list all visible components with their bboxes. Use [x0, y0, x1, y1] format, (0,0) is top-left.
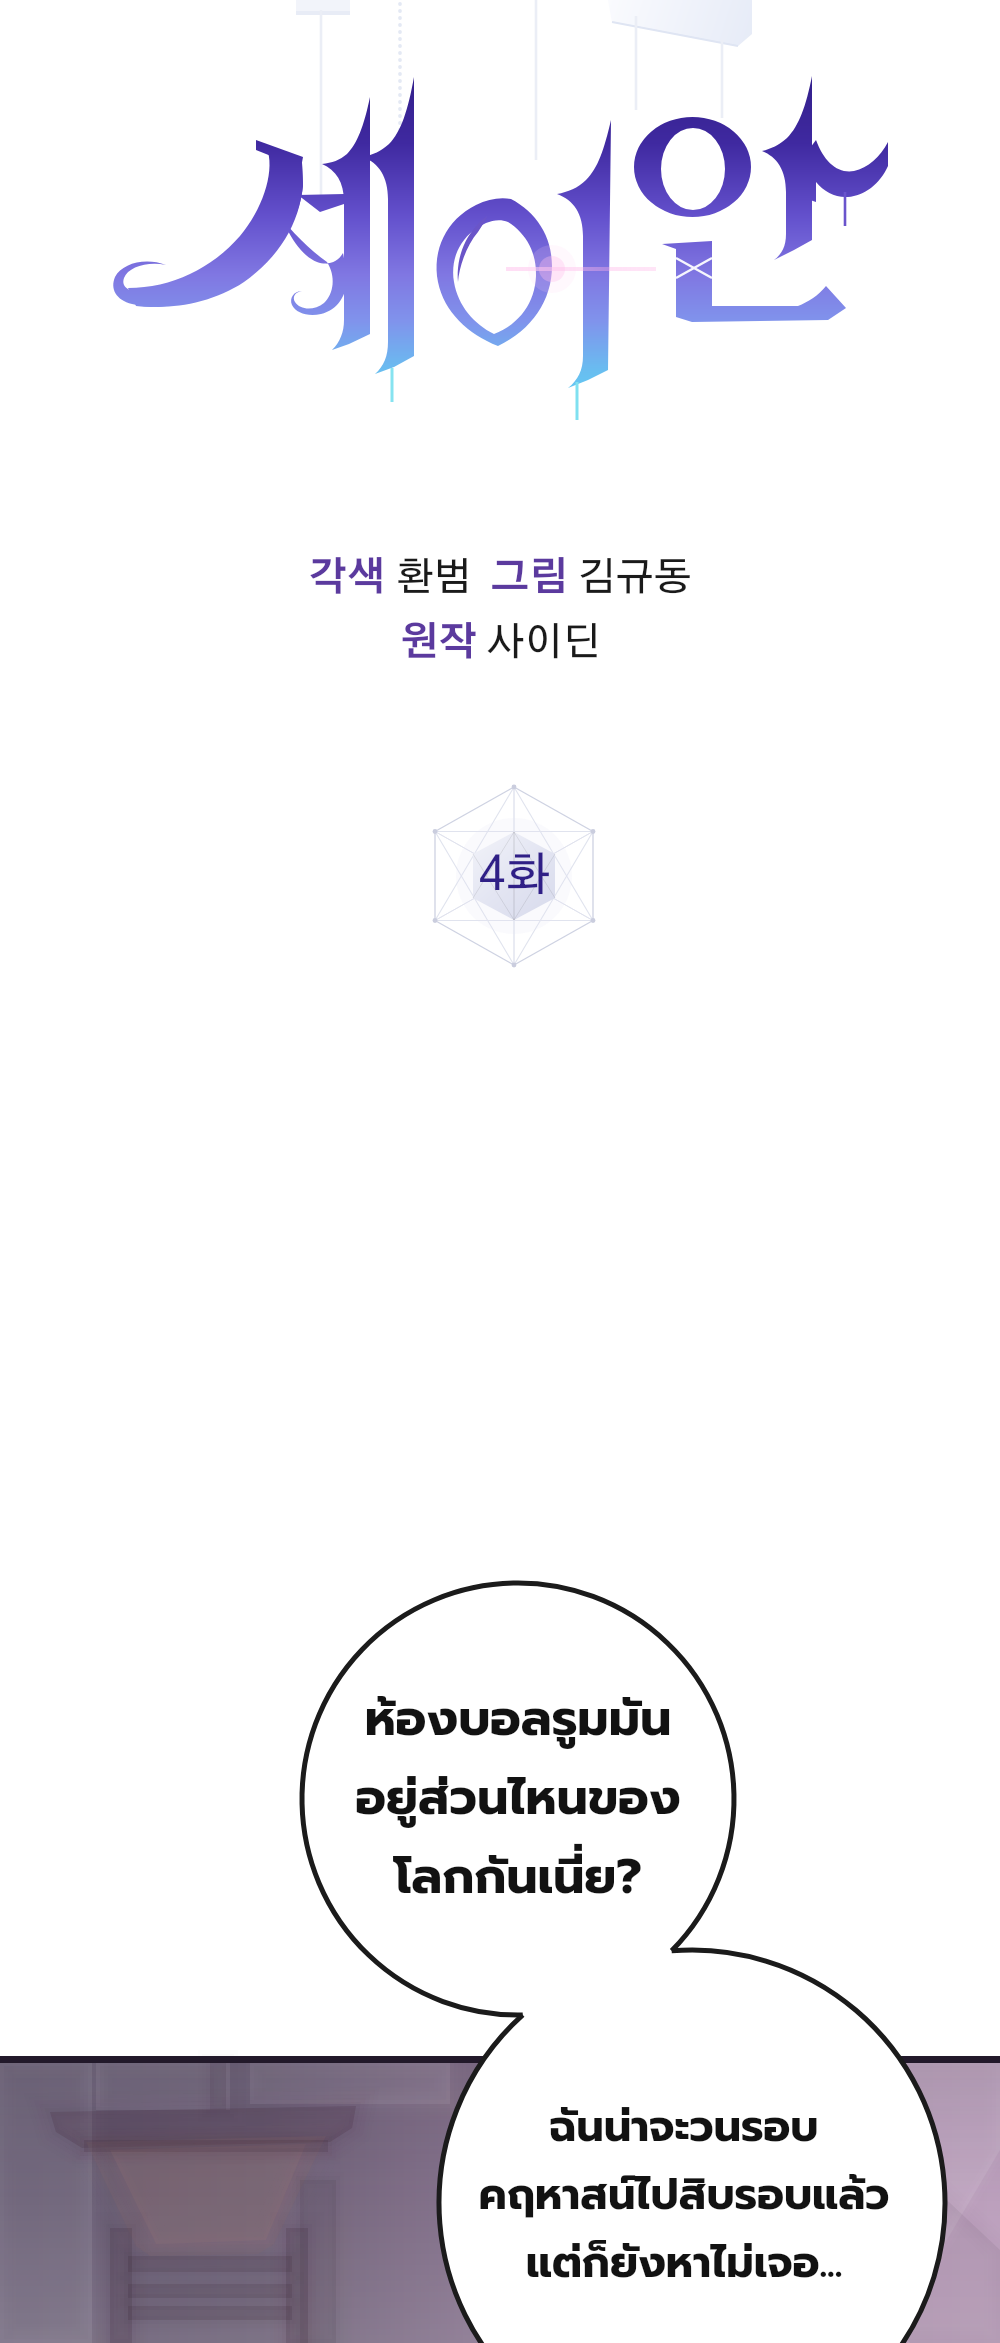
staticText: 원작 사이딘 — [399, 624, 601, 663]
button[interactable]: Webtoon episode page, tap to show contro… — [0, 0, 1000, 2343]
staticText: ฉันน่าจะวนรอบ คฤหาสน์ไปสิบรอบแล้ว แต่ก็ย… — [444, 2094, 924, 2295]
staticText: ห้องบอลรูมมัน อยู่ส่วนไหนของ โลกกันเนี่ย… — [318, 1682, 718, 1914]
staticText: 4화 — [479, 853, 550, 899]
staticText: 각색 환범 그림 김규동 — [308, 559, 692, 598]
